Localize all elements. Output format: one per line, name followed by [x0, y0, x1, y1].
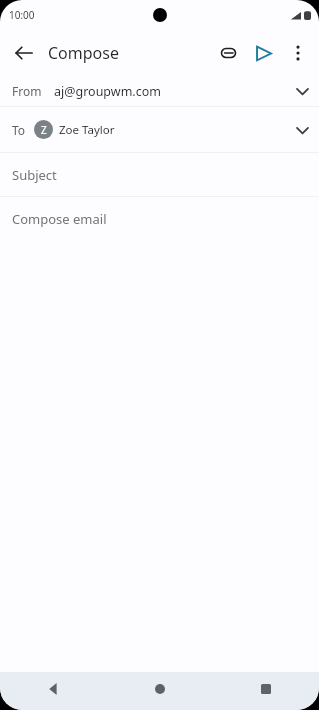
button[interactable]: From: [0, 76, 319, 106]
staticText: From: [12, 83, 42, 99]
button[interactable]: Send: [245, 35, 281, 71]
button[interactable]: Recent apps: [213, 672, 319, 706]
staticText: Compose: [48, 42, 119, 64]
staticText: Z: [41, 123, 47, 137]
button[interactable]: Z: [33, 119, 125, 140]
button[interactable]: Compose email: [0, 197, 319, 240]
button[interactable]: Attach file: [211, 36, 245, 70]
button[interactable]: Subject: [0, 153, 319, 196]
button[interactable]: Back: [0, 672, 107, 706]
button[interactable]: Expand: [287, 115, 317, 145]
staticText: aj@groupwm.com: [54, 83, 161, 100]
staticText: Zoe Taylor: [59, 122, 115, 138]
staticText: Compose email: [12, 210, 107, 228]
staticText: To: [12, 122, 26, 138]
staticText: 10:00: [9, 8, 35, 22]
button[interactable]: To: [0, 107, 319, 152]
button[interactable]: More options: [281, 36, 315, 70]
button[interactable]: Back: [4, 33, 44, 73]
button[interactable]: Expand: [287, 76, 317, 106]
staticText: Subject: [12, 166, 57, 184]
button[interactable]: Home: [107, 672, 213, 706]
